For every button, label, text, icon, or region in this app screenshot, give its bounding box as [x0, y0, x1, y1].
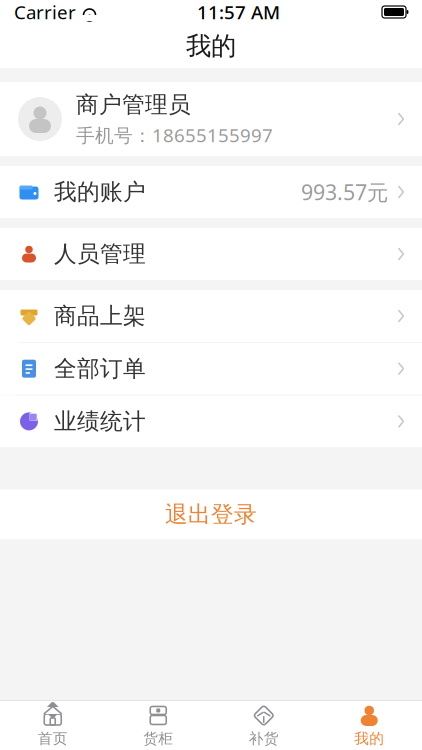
button[interactable]: 全部订单	[0, 343, 422, 395]
staticText: 人员管理	[54, 240, 146, 268]
staticText: 首页	[38, 729, 68, 747]
staticText: 商户管理员	[76, 91, 191, 118]
button[interactable]: 补货	[211, 701, 316, 750]
staticText: 11:57 AM	[197, 0, 280, 24]
staticText: 补货	[249, 729, 279, 747]
button[interactable]: 我的	[316, 701, 422, 750]
button[interactable]: 我的账户	[0, 166, 422, 218]
staticText: 993.57元	[301, 178, 388, 206]
staticText: 业绩统计	[54, 407, 146, 435]
button[interactable]: 首页	[0, 701, 105, 750]
staticText: 货柜	[143, 729, 173, 747]
staticText: 我的	[354, 729, 384, 747]
staticText: Carrier	[14, 0, 76, 24]
button[interactable]: 退出登录	[0, 489, 422, 539]
button[interactable]: 业绩统计	[0, 395, 422, 447]
button[interactable]: 货柜	[105, 701, 211, 750]
button[interactable]: 人员管理	[0, 228, 422, 280]
staticText: 全部订单	[54, 355, 146, 383]
staticText: 手机号：18655155997	[76, 122, 273, 147]
staticText: 退出登录	[165, 500, 257, 528]
staticText: 商品上架	[54, 302, 146, 330]
staticText: 我的账户	[54, 178, 146, 206]
button[interactable]: 商户管理员	[0, 82, 422, 156]
staticText: 我的	[186, 30, 236, 61]
button[interactable]: 商品上架	[0, 290, 422, 342]
